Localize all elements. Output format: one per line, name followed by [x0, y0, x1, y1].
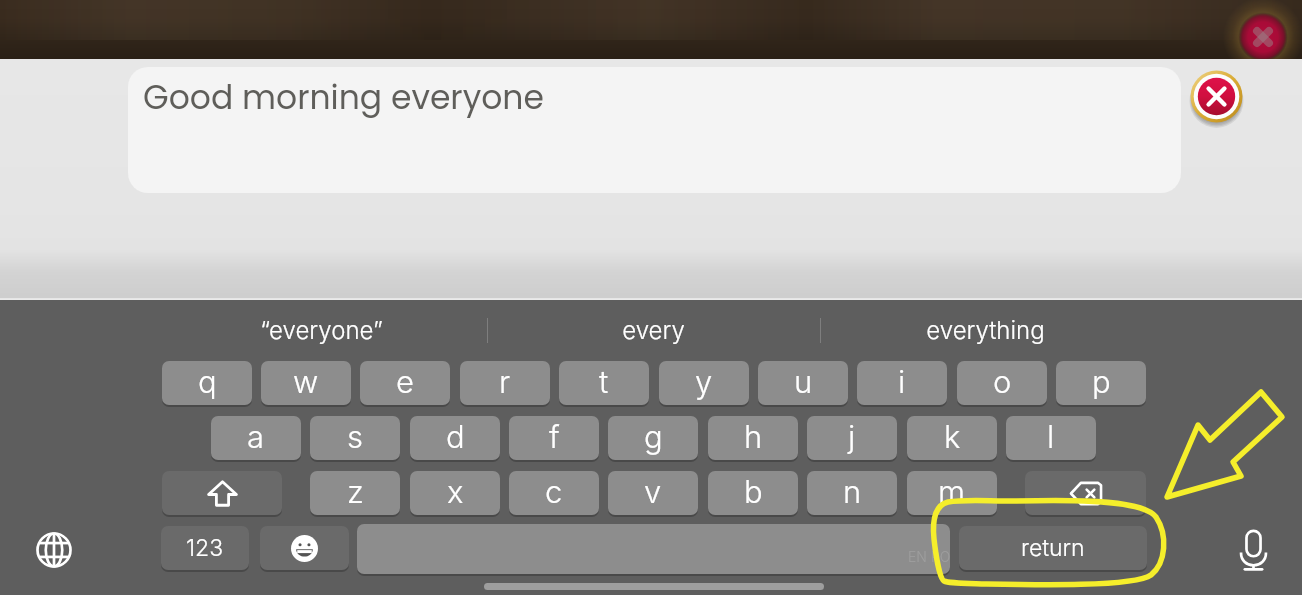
button[interactable]: Space [357, 524, 950, 574]
staticText: y [695, 363, 713, 401]
staticText: o [993, 363, 1012, 401]
button[interactable]: q [162, 361, 252, 405]
button[interactable]: c [509, 471, 599, 515]
button[interactable]: s [310, 416, 400, 460]
staticText: i [898, 363, 906, 401]
staticText: s [347, 418, 363, 456]
button[interactable]: p [1056, 361, 1146, 405]
staticText: h [744, 418, 763, 456]
staticText: m [938, 473, 966, 511]
staticText: n [843, 473, 862, 511]
button[interactable]: Backspace [1025, 471, 1146, 515]
button[interactable]: Close [1190, 70, 1243, 123]
button[interactable]: v [608, 471, 698, 515]
button[interactable]: r [460, 361, 550, 405]
staticText: b [744, 473, 763, 511]
button[interactable]: e [360, 361, 450, 405]
staticText: k [944, 418, 961, 456]
staticText: l [1047, 418, 1055, 456]
button[interactable]: Good morning everyone [128, 67, 1181, 193]
button[interactable]: b [708, 471, 798, 515]
button[interactable]: g [608, 416, 698, 460]
staticText: e [396, 363, 414, 401]
staticText: everything [926, 316, 1045, 345]
button[interactable]: m [907, 471, 997, 515]
button[interactable]: everything [825, 302, 1145, 356]
button[interactable]: z [310, 471, 400, 515]
button[interactable]: d [410, 416, 500, 460]
button[interactable]: l [1006, 416, 1096, 460]
button[interactable]: t [559, 361, 649, 405]
staticText: u [794, 363, 813, 401]
staticText: d [446, 418, 465, 456]
button[interactable]: every [493, 302, 813, 356]
staticText: f [549, 418, 560, 456]
button[interactable]: Shift [162, 471, 282, 515]
staticText: p [1092, 363, 1111, 401]
button[interactable]: x [410, 471, 500, 515]
staticText: q [198, 363, 217, 401]
staticText: c [545, 473, 563, 511]
staticText: every [622, 316, 685, 345]
button[interactable]: Dictate [1231, 528, 1275, 572]
staticText: return [1021, 534, 1085, 562]
staticText: t [599, 363, 609, 401]
staticText: v [644, 473, 662, 511]
button[interactable]: 123 [161, 526, 249, 570]
button[interactable]: Emoji [260, 526, 349, 570]
button[interactable]: n [807, 471, 897, 515]
staticText: a [247, 418, 265, 456]
button[interactable]: k [907, 416, 997, 460]
button[interactable]: w [261, 361, 351, 405]
staticText: x [447, 473, 464, 511]
button[interactable]: h [708, 416, 798, 460]
staticText: g [644, 418, 663, 456]
button[interactable]: Change keyboard language [32, 528, 76, 572]
button[interactable]: u [758, 361, 848, 405]
staticText: r [499, 363, 511, 401]
button[interactable]: o [957, 361, 1047, 405]
staticText: z [347, 473, 364, 511]
button[interactable]: j [807, 416, 897, 460]
staticText: w [293, 363, 319, 401]
staticText: “everyone” [260, 316, 383, 345]
button[interactable]: y [659, 361, 749, 405]
staticText: 123 [186, 534, 224, 562]
button[interactable]: f [509, 416, 599, 460]
button[interactable]: “everyone” [161, 302, 481, 356]
staticText: j [848, 418, 856, 456]
staticText: Good morning everyone [143, 74, 544, 120]
button[interactable]: i [857, 361, 947, 405]
button[interactable]: a [211, 416, 301, 460]
staticText: EN RO [908, 548, 950, 565]
button[interactable]: return [959, 526, 1147, 570]
